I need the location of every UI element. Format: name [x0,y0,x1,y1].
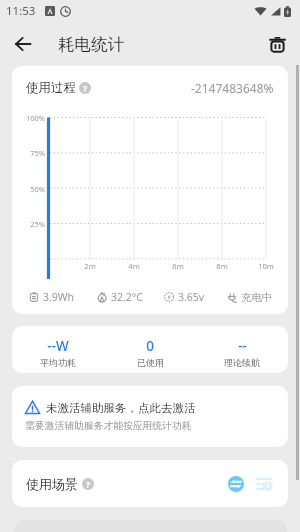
staticText: 平均功耗 [40,357,76,368]
staticText: 32.2°C [111,290,143,304]
staticText: 25% [30,219,45,229]
button[interactable]: 未激活辅助服务，点此去激活 [12,386,288,447]
staticText: 4m [128,261,140,271]
staticText: ? [83,83,87,94]
button[interactable]: Help [79,82,91,94]
staticText: 使用过程 [26,80,76,96]
button[interactable]: --W [12,326,104,373]
staticText: 100% [25,113,45,123]
button[interactable]: 0 [104,326,196,373]
staticText: 11:53 [6,3,36,19]
staticText: 0 [146,337,154,355]
staticText: -2147483648% [191,80,274,96]
staticText: 已使用 [137,357,164,368]
staticText: 6m [172,261,184,271]
staticText: 50% [30,184,45,194]
staticText: -- [238,337,247,355]
staticText: 理论续航 [224,357,260,368]
staticText: 使用场景 [26,476,78,492]
staticText: 耗电统计 [58,34,124,55]
button[interactable]: Sort [224,472,248,496]
staticText: 8m [216,261,228,271]
button[interactable]: History [252,472,276,496]
staticText: 75% [30,148,45,158]
staticText: 2m [84,261,96,271]
button[interactable]: -- [196,326,288,373]
staticText: 10m [258,261,274,271]
staticText: 需要激活辅助服务才能按应用统计功耗 [25,420,192,432]
staticText: 3.9Wh [43,290,75,304]
button[interactable]: Back [0,22,46,66]
button[interactable]: Help [82,478,94,490]
staticText: 3.65v [178,290,205,304]
staticText: ? [86,479,90,490]
staticText: 未激活辅助服务，点此去激活 [46,401,196,415]
staticText: --W [47,337,69,355]
staticText: 充电中 [241,291,273,304]
button[interactable]: Delete [254,22,300,66]
